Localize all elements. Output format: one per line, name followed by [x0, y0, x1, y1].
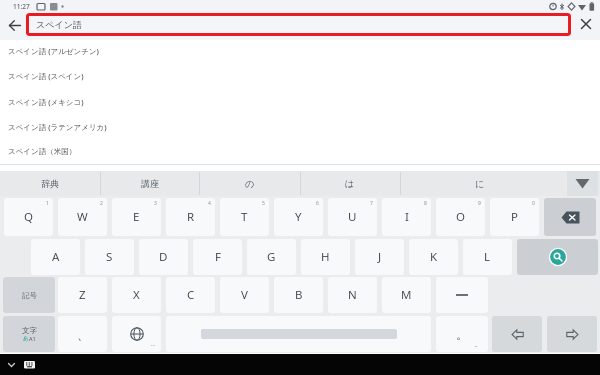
button[interactable]: Z — [58, 277, 107, 313]
button[interactable]: スペイン語 (ラテンアメリカ) — [0, 114, 600, 139]
button[interactable]: D — [139, 239, 188, 275]
button[interactable]: 、 — [58, 316, 107, 352]
staticText: … — [151, 341, 155, 348]
button[interactable]: 講座 — [100, 171, 199, 196]
staticText: M — [401, 287, 412, 303]
staticText: 3 — [154, 200, 157, 207]
staticText: H — [321, 249, 330, 265]
button[interactable]: A — [31, 239, 80, 275]
button[interactable]: は — [300, 171, 400, 196]
staticText: G — [267, 249, 276, 265]
staticText: あ — [23, 335, 29, 342]
button[interactable]: I — [382, 198, 431, 236]
staticText: O — [456, 209, 465, 225]
staticText: E — [133, 209, 140, 225]
button[interactable]: 文字 — [3, 316, 55, 352]
staticText: は — [345, 178, 355, 189]
button[interactable]: スペイン語 (アルゼンチン) — [0, 38, 600, 63]
button[interactable]: W — [58, 198, 107, 236]
button[interactable]: スペイン語 (スペイン) — [0, 63, 600, 88]
button[interactable]: E — [112, 198, 161, 236]
button[interactable]: J — [355, 239, 404, 275]
button[interactable]: スペイン語（米国） — [0, 139, 600, 164]
button[interactable]: 記号 — [3, 277, 55, 313]
button[interactable]: 。 — [436, 316, 488, 352]
button[interactable] — [574, 13, 597, 35]
staticText: A — [52, 249, 60, 265]
staticText: スペイン語 (アルゼンチン) — [8, 46, 99, 56]
staticText: 9 — [478, 200, 481, 207]
staticText: N — [348, 287, 357, 303]
button[interactable]: P — [490, 198, 539, 236]
staticText: Z — [79, 287, 86, 303]
staticText: 1 — [46, 200, 49, 207]
staticText: K — [430, 249, 438, 265]
button[interactable]: C — [166, 277, 215, 313]
button[interactable]: F — [193, 239, 242, 275]
staticText: スペイン語 (メキシコ) — [8, 97, 84, 107]
staticText: スペイン語 — [36, 19, 82, 30]
staticText: 6 — [316, 200, 319, 207]
staticText: 2 — [100, 200, 103, 207]
staticText: A1 — [29, 335, 36, 342]
staticText: U — [348, 209, 357, 225]
staticText: 11:27 — [13, 2, 30, 11]
button[interactable] — [544, 198, 596, 236]
staticText: F — [215, 249, 221, 265]
button[interactable] — [492, 316, 542, 352]
button[interactable] — [547, 316, 597, 352]
staticText: R — [187, 209, 195, 225]
button[interactable]: スペイン語 (メキシコ) — [0, 89, 600, 114]
staticText: 辞典 — [41, 178, 59, 189]
button[interactable]: K — [409, 239, 458, 275]
button[interactable]: G — [247, 239, 296, 275]
staticText: V — [241, 287, 248, 303]
staticText: J — [378, 249, 382, 265]
staticText: P — [511, 209, 518, 225]
button[interactable]: R — [166, 198, 215, 236]
button[interactable]: S — [85, 239, 134, 275]
staticText: D — [159, 249, 168, 265]
button[interactable] — [166, 316, 431, 352]
button[interactable]: の — [199, 171, 301, 196]
staticText: 5 — [262, 200, 265, 207]
button[interactable] — [4, 357, 19, 373]
staticText: L — [484, 249, 491, 265]
staticText: 8 — [424, 200, 427, 207]
staticText: _ — [475, 341, 478, 348]
button[interactable]: B — [274, 277, 323, 313]
button[interactable]: H — [301, 239, 350, 275]
button[interactable]: … — [112, 316, 161, 352]
button[interactable]: M — [382, 277, 431, 313]
button[interactable] — [5, 14, 25, 36]
button[interactable] — [517, 239, 598, 275]
button[interactable] — [22, 357, 37, 373]
button[interactable]: に — [400, 171, 560, 196]
button[interactable]: Y — [274, 198, 323, 236]
staticText: 。 — [456, 327, 468, 342]
staticText: C — [187, 287, 195, 303]
button[interactable] — [567, 171, 598, 196]
button[interactable]: 辞典 — [0, 171, 100, 196]
staticText: S — [106, 249, 113, 265]
staticText: Y — [295, 209, 302, 225]
staticText: スペイン語 (スペイン) — [8, 71, 84, 81]
staticText: 文字 — [22, 326, 37, 335]
staticText: X — [133, 287, 140, 303]
staticText: 講座 — [141, 178, 159, 189]
button[interactable]: スペイン語 — [26, 13, 571, 36]
button[interactable]: O — [436, 198, 485, 236]
button[interactable]: T — [220, 198, 269, 236]
button[interactable]: X — [112, 277, 161, 313]
staticText: 4 — [208, 200, 211, 207]
button[interactable]: N — [328, 277, 377, 313]
button[interactable]: Q — [4, 198, 53, 236]
staticText: スペイン語 (ラテンアメリカ) — [8, 122, 107, 132]
staticText: スペイン語（米国） — [8, 147, 77, 156]
button[interactable]: U — [328, 198, 377, 236]
button[interactable] — [436, 277, 488, 313]
staticText: に — [475, 178, 485, 189]
staticText: Q — [24, 209, 33, 225]
button[interactable]: V — [220, 277, 269, 313]
button[interactable]: L — [463, 239, 512, 275]
